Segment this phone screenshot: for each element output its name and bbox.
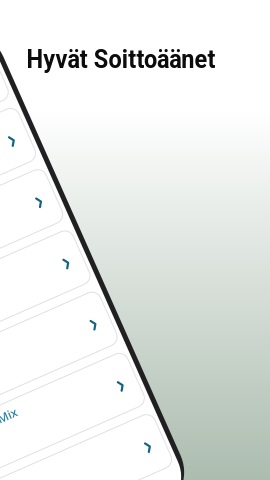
button[interactable]: Hauskat soittoäänet [6,158,270,216]
button[interactable]: Suomalaisten hitit Mix [6,359,270,417]
staticText: 32 ääntä [22,191,58,204]
button[interactable]: Uutuudet [6,426,270,480]
button[interactable]: Klassiset puhelinsoittoäänet [6,91,270,149]
staticText: 18 ääntä [22,124,58,137]
staticText: 12 ääntä [22,459,58,472]
staticText: Elokuvatunnarit [24,297,118,312]
staticText: 27 ääntä [22,392,58,405]
staticText: Uutuudet [24,431,81,446]
staticText: Hauskat soittoäänet [24,163,143,179]
button[interactable]: Rauhalliset herätysäänet [6,225,270,283]
button[interactable]: Elokuvatunnarit [6,292,270,350]
staticText: Klassiset puhelinsoittoäänet [24,96,189,112]
staticText: Hyvät Soittoäänet [20,45,223,74]
staticText: Rauhalliset herätysäänet [24,230,170,246]
button[interactable]: Suosituimmat soittoäänet [6,24,270,82]
staticText: 24 ääntä [22,57,58,70]
staticText: Suomalaisten hitit Mix [24,364,154,379]
